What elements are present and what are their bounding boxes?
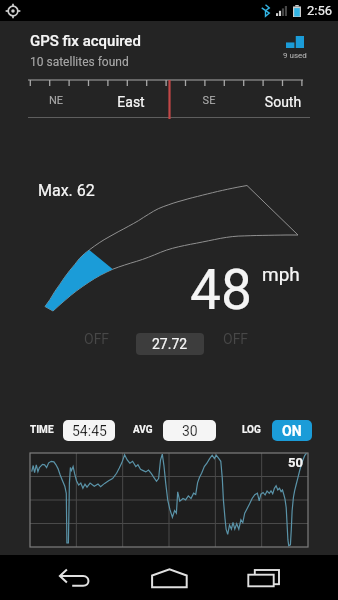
staticText: 50 [288, 455, 303, 470]
staticText: AVG [133, 424, 153, 436]
staticText: LOG [242, 424, 261, 436]
staticText: 54:45 [72, 423, 107, 439]
button[interactable]: 27.72 [136, 333, 204, 355]
button[interactable]: 30 [163, 420, 216, 441]
button[interactable]: Back [50, 555, 102, 600]
staticText: 9 used [283, 51, 307, 60]
staticText: 30 [182, 423, 198, 439]
staticText: ON [282, 423, 302, 439]
staticText: GPS fix acquired [30, 32, 141, 50]
staticText: 10 satellites found [30, 55, 129, 69]
staticText: mph [262, 263, 300, 285]
staticText: South [243, 94, 323, 110]
button[interactable]: Home [143, 555, 195, 600]
staticText: OFF [223, 331, 249, 347]
staticText: 48 [190, 258, 252, 322]
button[interactable]: Recent apps [238, 555, 290, 600]
staticText: NE [16, 94, 96, 107]
staticText: East [91, 94, 171, 110]
staticText: OFF [84, 331, 110, 347]
staticText: Max. 62 [38, 181, 95, 200]
button[interactable]: 54:45 [63, 420, 115, 441]
button[interactable]: ON [272, 420, 312, 441]
staticText: SE [169, 94, 249, 107]
staticText: TIME [30, 424, 54, 436]
staticText: 27.72 [152, 336, 188, 352]
staticText: 2:56 [307, 3, 333, 18]
